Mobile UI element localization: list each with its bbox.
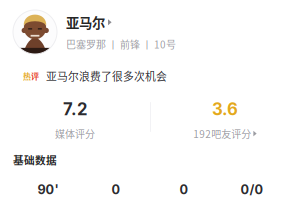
staticText: 3.6 (212, 99, 238, 119)
button[interactable]: 亚马尔 (13, 10, 291, 54)
staticText: 亚马尔 (66, 13, 105, 32)
staticText: 基础数据 (13, 152, 57, 167)
staticText: 7.2 (63, 99, 87, 119)
staticText: 评 (31, 70, 39, 82)
staticText: 0 (179, 182, 188, 197)
staticText: 0/0 (240, 182, 263, 197)
staticText: 亚马尔浪费了很多次机会 (46, 68, 167, 84)
staticText: 192吧友评分 (193, 126, 251, 141)
staticText: 90' (37, 182, 58, 197)
staticText: 巴塞罗那 丨 前锋 丨 10号 (66, 37, 176, 51)
staticText: 热 (23, 70, 31, 82)
staticText: 0 (111, 182, 120, 197)
button[interactable]: 热 (23, 69, 288, 83)
button[interactable]: 3.6 (150, 99, 300, 141)
staticText: 媒体评分 (55, 126, 95, 141)
